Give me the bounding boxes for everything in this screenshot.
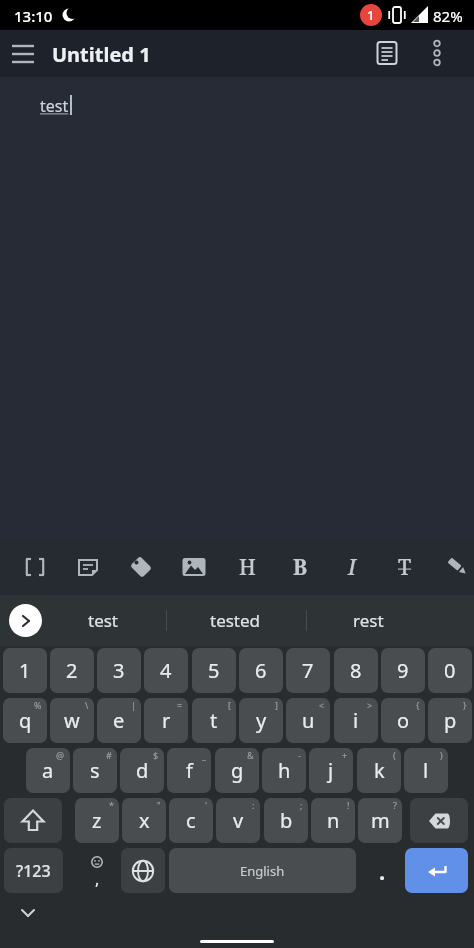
- button[interactable]: y: [239, 698, 283, 743]
- staticText: 6: [255, 657, 267, 684]
- button[interactable]: [10, 895, 46, 931]
- staticText: (: [393, 749, 396, 761]
- staticText: 4: [160, 657, 172, 684]
- button[interactable]: 9: [381, 648, 425, 693]
- button[interactable]: ?123: [4, 848, 63, 893]
- button[interactable]: [6, 37, 40, 71]
- button[interactable]: [174, 547, 214, 587]
- staticText: ?: [393, 799, 397, 811]
- button[interactable]: j: [309, 748, 353, 793]
- button[interactable]: n: [311, 798, 355, 843]
- button[interactable]: 6: [239, 648, 283, 693]
- button[interactable]: H: [227, 547, 267, 587]
- staticText: j: [328, 757, 334, 784]
- staticText: 5: [208, 657, 220, 684]
- button[interactable]: u: [286, 698, 330, 743]
- staticText: 9: [397, 657, 409, 684]
- button[interactable]: d: [120, 748, 164, 793]
- button[interactable]: g: [215, 748, 259, 793]
- staticText: i: [353, 707, 359, 734]
- button[interactable]: rest: [306, 595, 430, 646]
- staticText: f: [186, 757, 193, 784]
- staticText: *: [109, 799, 114, 811]
- button[interactable]: .: [360, 848, 404, 893]
- button[interactable]: [370, 36, 404, 70]
- button[interactable]: 5: [192, 648, 236, 693]
- staticText: x: [139, 807, 150, 834]
- staticText: 82%: [433, 6, 463, 26]
- staticText: [: [228, 699, 231, 711]
- button[interactable]: l: [404, 748, 448, 793]
- staticText: |: [131, 699, 136, 711]
- staticText: $: [153, 749, 159, 761]
- staticText: test: [40, 95, 69, 117]
- button[interactable]: t: [192, 698, 236, 743]
- staticText: %: [34, 699, 42, 711]
- button[interactable]: [420, 36, 454, 70]
- button[interactable]: 7: [286, 648, 330, 693]
- staticText: l: [423, 757, 429, 784]
- button[interactable]: English: [169, 848, 356, 893]
- button[interactable]: test: [50, 595, 156, 646]
- staticText: 0: [444, 657, 456, 684]
- staticText: .: [379, 856, 386, 886]
- staticText: H: [239, 553, 256, 582]
- button[interactable]: f: [167, 748, 211, 793]
- button[interactable]: 8: [334, 648, 378, 693]
- staticText: ': [205, 799, 208, 811]
- staticText: _: [202, 749, 206, 761]
- button[interactable]: [9, 604, 42, 637]
- button[interactable]: a: [26, 748, 70, 793]
- button[interactable]: [4, 798, 62, 843]
- button[interactable]: r: [144, 698, 188, 743]
- button[interactable]: [410, 798, 468, 843]
- staticText: ): [440, 749, 443, 761]
- button[interactable]: 3: [97, 648, 141, 693]
- staticText: r: [162, 707, 171, 734]
- button[interactable]: w: [50, 698, 94, 743]
- button[interactable]: q: [3, 698, 47, 743]
- staticText: 1: [19, 657, 31, 684]
- button[interactable]: [121, 848, 165, 893]
- button[interactable]: v: [216, 798, 260, 843]
- button[interactable]: 0: [428, 648, 472, 693]
- button[interactable]: e: [97, 698, 141, 743]
- staticText: k: [374, 757, 385, 784]
- staticText: T: [398, 553, 412, 582]
- button[interactable]: o: [381, 698, 425, 743]
- button[interactable]: [68, 547, 108, 587]
- staticText: u: [302, 707, 315, 734]
- button[interactable]: tested: [166, 595, 304, 646]
- button[interactable]: 4: [144, 648, 188, 693]
- staticText: rest: [353, 609, 384, 632]
- button[interactable]: 1: [3, 648, 47, 693]
- button[interactable]: x: [122, 798, 166, 843]
- staticText: o: [397, 707, 410, 734]
- button[interactable]: [15, 547, 55, 587]
- staticText: h: [278, 757, 291, 784]
- button[interactable]: h: [262, 748, 306, 793]
- button[interactable]: test: [0, 77, 474, 540]
- button[interactable]: p: [428, 698, 472, 743]
- button[interactable]: I: [332, 547, 372, 587]
- staticText: {: [416, 699, 420, 711]
- button[interactable]: s: [73, 748, 117, 793]
- button[interactable]: z: [75, 798, 119, 843]
- staticText: tested: [210, 609, 261, 632]
- button[interactable]: c: [169, 798, 213, 843]
- button[interactable]: 2: [50, 648, 94, 693]
- staticText: 1: [367, 6, 375, 24]
- staticText: }: [463, 699, 467, 711]
- button[interactable]: i: [334, 698, 378, 743]
- button[interactable]: m: [358, 798, 402, 843]
- staticText: test: [88, 609, 119, 632]
- button[interactable]: ,: [75, 848, 119, 893]
- button[interactable]: T: [385, 547, 425, 587]
- button[interactable]: [405, 848, 468, 893]
- button[interactable]: b: [264, 798, 308, 843]
- button[interactable]: [438, 547, 474, 587]
- button[interactable]: [121, 547, 161, 587]
- button[interactable]: B: [280, 547, 320, 587]
- staticText: 3: [113, 657, 125, 684]
- button[interactable]: k: [357, 748, 401, 793]
